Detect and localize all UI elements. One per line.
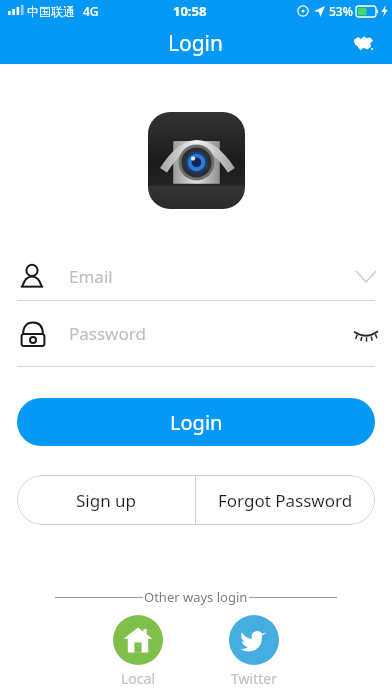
staticText: Password [69,322,146,345]
staticText: Other ways login [144,588,248,606]
button[interactable]: Show saved accounts [346,256,386,296]
button[interactable]: Forgot Password [196,475,375,525]
staticText: Sign up [76,489,137,512]
staticText: Login [170,409,223,436]
staticText: 中国联通 [27,4,75,19]
staticText: Forgot Password [218,489,353,512]
button[interactable]: Log in locally [104,615,172,688]
button[interactable]: Sign up [17,475,195,525]
button[interactable]: Log in with Twitter [220,615,288,688]
button[interactable]: Select region [346,26,380,60]
button[interactable]: Login [17,398,375,446]
staticText: Twitter [231,669,277,688]
button[interactable]: Password [0,301,392,366]
button[interactable]: Email [0,252,392,300]
staticText: Email [69,265,113,288]
button[interactable]: Show password [344,312,388,356]
staticText: 53% [329,3,353,19]
staticText: Local [121,669,155,688]
staticText: 4G [83,3,99,19]
staticText: Login [168,29,224,58]
staticText: 10:58 [173,2,207,20]
